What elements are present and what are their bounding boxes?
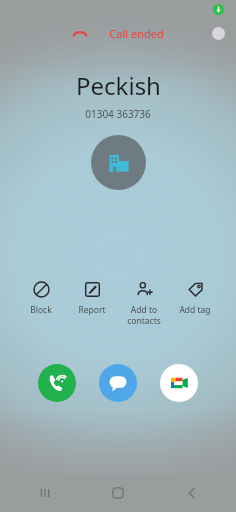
button[interactable]: Home (89, 474, 147, 512)
button[interactable]: Report (68, 279, 116, 318)
button[interactable]: Recents (16, 474, 74, 512)
button[interactable]: Add tag (171, 279, 219, 318)
staticText: Report (68, 304, 116, 316)
staticText: Add tag (171, 304, 219, 316)
staticText: Peckish (76, 69, 161, 102)
button[interactable]: Call (38, 364, 76, 402)
button[interactable]: Back (163, 474, 221, 512)
button[interactable]: Message (99, 364, 137, 402)
staticText: Call ended (109, 26, 164, 41)
button[interactable]: Video call (160, 364, 198, 402)
staticText: Block (17, 304, 65, 316)
staticText: Add to contacts (120, 304, 168, 326)
button[interactable]: Menu (212, 27, 225, 40)
button[interactable]: Block (17, 279, 65, 318)
button[interactable]: Add to contacts (120, 279, 168, 328)
staticText: 01304 363736 (85, 107, 151, 121)
button[interactable]: Contact photo (91, 135, 146, 190)
